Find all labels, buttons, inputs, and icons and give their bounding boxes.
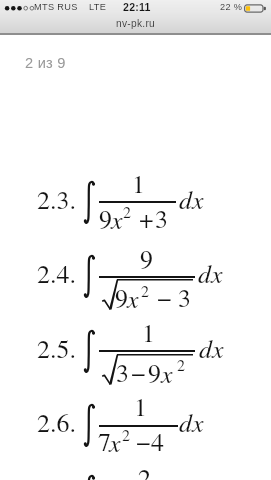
staticText: dx	[199, 330, 224, 365]
other: Battery 22 percent	[244, 3, 268, 14]
staticText: 3	[155, 201, 169, 236]
staticText: x	[161, 355, 173, 390]
staticText: 9	[140, 241, 154, 276]
staticText: MTS RUS	[34, 2, 78, 12]
staticText: 9	[148, 355, 162, 390]
staticText: nv-pk.ru	[116, 18, 156, 29]
staticText: 1	[142, 315, 156, 350]
staticText: 2	[177, 354, 186, 375]
staticText: 2	[122, 424, 131, 445]
staticText: dx	[179, 181, 204, 216]
staticText: dx	[198, 255, 223, 290]
staticText: 22:11	[123, 1, 151, 13]
staticText: 1	[134, 389, 148, 424]
staticText: 2 из 9	[25, 55, 66, 71]
staticText: x	[111, 201, 123, 236]
staticText: 4	[151, 424, 165, 459]
staticText: 1	[132, 166, 146, 201]
staticText: 3	[116, 355, 130, 390]
staticText: 2	[123, 201, 132, 222]
staticText: 7	[98, 424, 112, 459]
staticText: 22 %	[220, 2, 243, 12]
staticText: 2.6.	[37, 405, 77, 440]
staticText: −	[136, 424, 151, 459]
staticText: +	[139, 201, 154, 236]
staticText: 2.5.	[37, 331, 77, 366]
staticText: −	[157, 280, 172, 315]
staticText: 2	[141, 280, 150, 301]
staticText: 2.4.	[37, 256, 77, 291]
staticText: dx	[179, 404, 204, 439]
staticText: x	[127, 280, 139, 315]
other: Signal strength	[4, 5, 35, 12]
staticText: 2.3.	[37, 182, 77, 217]
button[interactable]: 2 из 9	[25, 55, 66, 71]
staticText: 3	[178, 280, 192, 315]
staticText: 9	[99, 201, 113, 236]
staticText: 9	[115, 280, 129, 315]
staticText: −	[131, 355, 146, 390]
staticText: x	[109, 424, 121, 459]
staticText: 2	[138, 460, 152, 480]
staticText: LTE	[89, 2, 107, 12]
